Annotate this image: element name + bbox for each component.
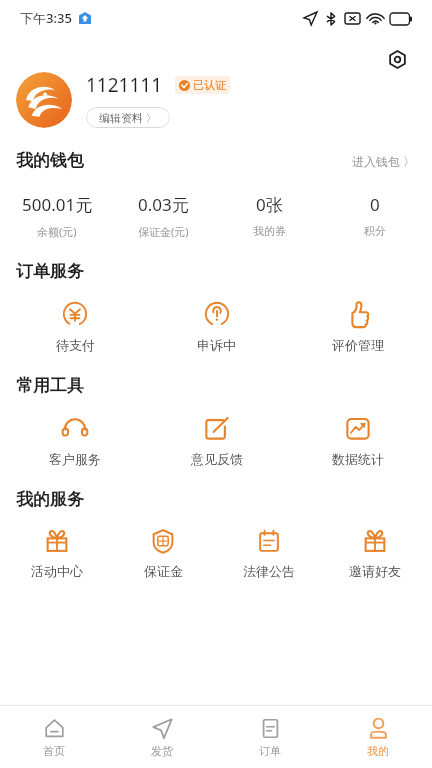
button[interactable]: 编辑资料 〉	[86, 107, 170, 128]
staticText: 保证金(元)	[138, 224, 189, 239]
button[interactable]: 0	[322, 193, 428, 238]
staticText: 我的	[367, 744, 389, 758]
staticText: 意见反馈	[191, 451, 243, 467]
staticText: 编辑资料 〉	[99, 110, 157, 125]
staticText: 我的券	[253, 224, 286, 238]
button[interactable]: 头像	[16, 72, 72, 128]
button[interactable]: 订单	[216, 706, 324, 768]
staticText: 500.01元	[22, 193, 93, 216]
staticText: 1121111	[86, 72, 163, 98]
staticText: 下午3:35	[20, 9, 72, 27]
staticText: 已认证	[193, 78, 226, 92]
staticText: 数据统计	[332, 451, 384, 467]
staticText: 订单服务	[16, 261, 84, 282]
staticText: 我的钱包	[16, 150, 84, 171]
button[interactable]: 法律公告	[216, 528, 322, 579]
staticText: 积分	[364, 224, 386, 238]
staticText: 待支付	[56, 337, 95, 353]
button[interactable]: 500.01元	[4, 193, 110, 239]
staticText: 评价管理	[332, 337, 384, 353]
staticText: 订单	[259, 744, 281, 758]
button[interactable]: 0.03元	[110, 193, 216, 239]
staticText: 活动中心	[31, 563, 83, 579]
staticText: 0张	[256, 193, 283, 216]
button[interactable]: 0张	[216, 193, 322, 238]
button[interactable]: 首页	[0, 706, 108, 768]
button[interactable]: 活动中心	[4, 528, 110, 579]
staticText: 进入钱包 〉	[352, 153, 416, 169]
button[interactable]: 意见反馈	[146, 414, 287, 467]
staticText: 保证金	[144, 563, 183, 579]
button[interactable]: 待支付	[4, 300, 146, 353]
button[interactable]: 发货	[108, 706, 216, 768]
button[interactable]: 我的钱包	[16, 150, 416, 171]
button[interactable]: 设置	[380, 42, 414, 76]
staticText: 客户服务	[49, 451, 101, 467]
staticText: 0.03元	[138, 193, 189, 216]
button[interactable]: 申诉中	[146, 300, 287, 353]
staticText: 余额(元)	[37, 224, 77, 239]
button[interactable]: 我的	[324, 706, 432, 768]
staticText: 我的服务	[16, 489, 84, 510]
staticText: 0	[370, 193, 380, 216]
button[interactable]: 已认证	[175, 76, 230, 94]
staticText: 法律公告	[243, 563, 295, 579]
staticText: 发货	[151, 744, 173, 758]
staticText: 常用工具	[16, 375, 84, 396]
staticText: 邀请好友	[349, 563, 401, 579]
button[interactable]: 保证金	[110, 528, 216, 579]
staticText: 申诉中	[197, 337, 236, 353]
staticText: 首页	[43, 744, 65, 758]
button[interactable]: 评价管理	[287, 300, 428, 353]
button[interactable]: 客户服务	[4, 414, 146, 467]
button[interactable]: 数据统计	[287, 414, 428, 467]
button[interactable]: 邀请好友	[322, 528, 428, 579]
